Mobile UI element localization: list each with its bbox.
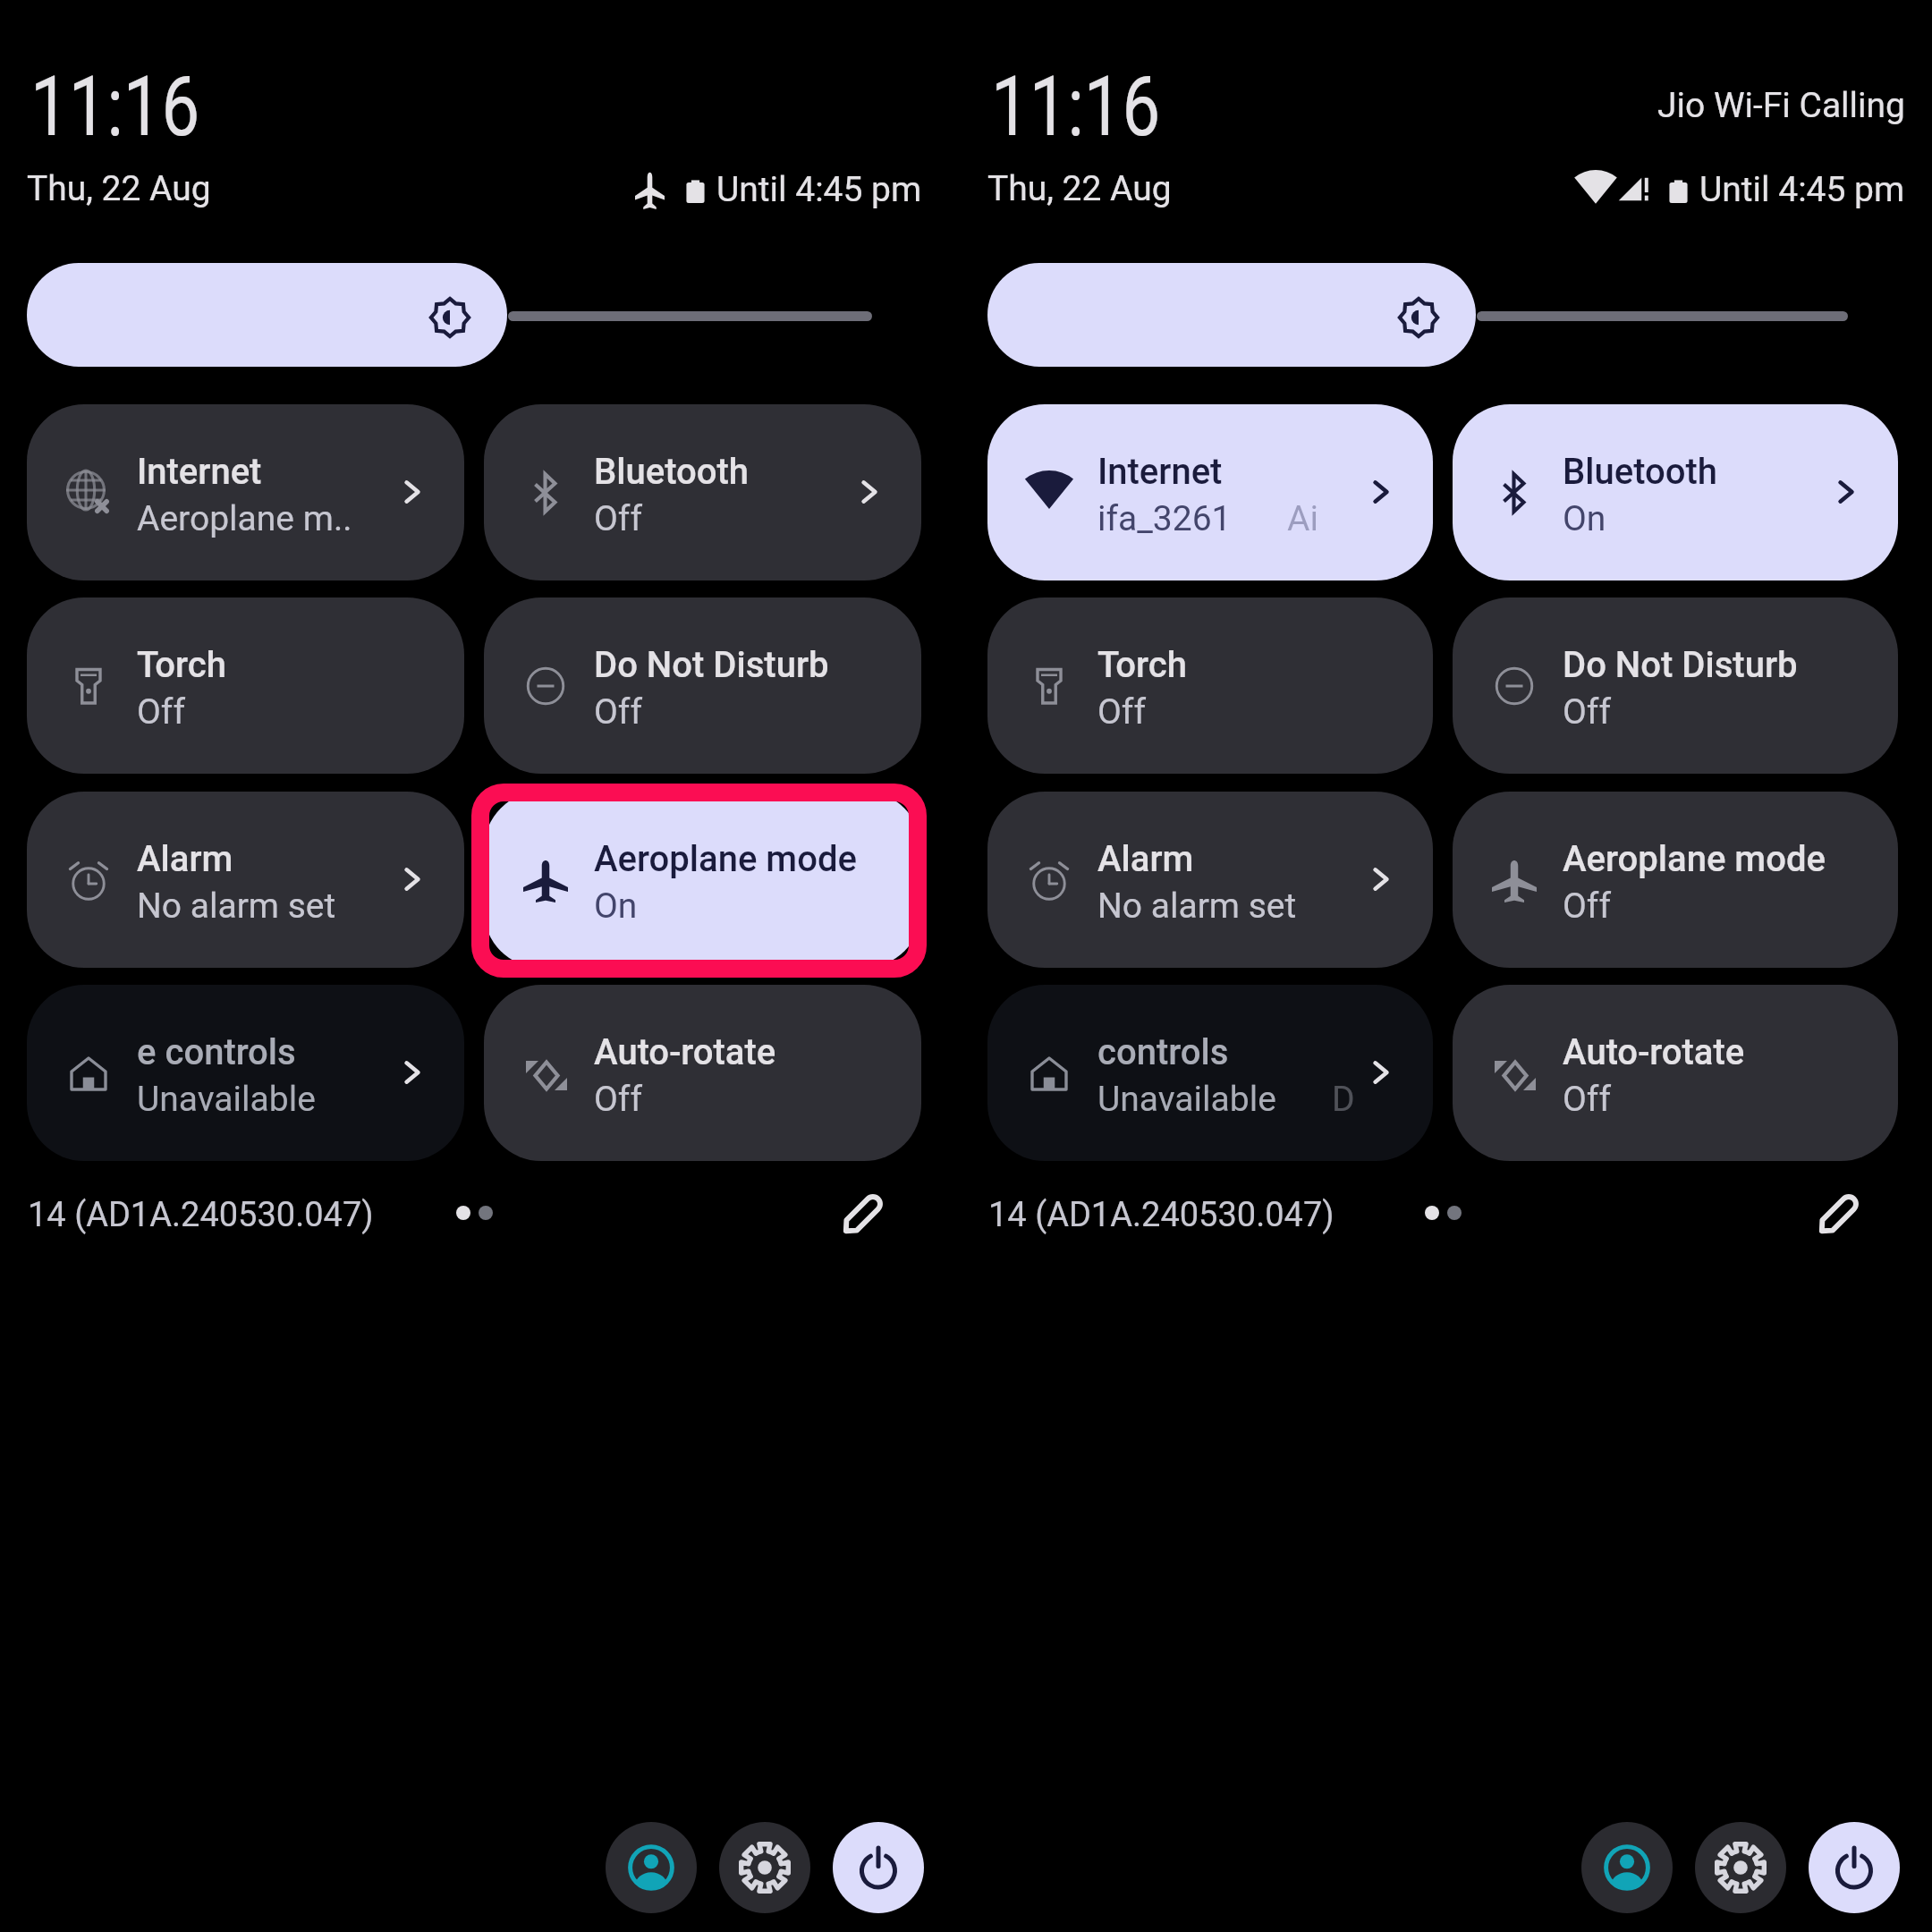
staticText: No alarm set [137, 885, 336, 927]
button[interactable]: Torch [27, 597, 464, 774]
button[interactable]: User [1581, 1822, 1673, 1913]
staticText: Ai [1287, 498, 1318, 539]
staticText: Torch [1097, 644, 1187, 686]
staticText: Internet [1097, 451, 1223, 493]
button[interactable]: Alarm [27, 792, 464, 968]
button[interactable]: Auto-rotate [484, 985, 921, 1161]
button[interactable]: Aeroplane mode [1453, 792, 1898, 968]
button[interactable]: controls [987, 985, 1433, 1161]
staticText: 14 (AD1A.240530.047) [988, 1195, 1335, 1235]
button[interactable]: User [606, 1822, 697, 1913]
staticText: Off [1563, 691, 1611, 733]
staticText: Aeroplane m.. [137, 498, 352, 539]
staticText: Do Not Disturb [594, 644, 829, 686]
button[interactable]: e controls [27, 985, 464, 1161]
button[interactable]: Settings [719, 1822, 810, 1913]
staticText: Alarm [1097, 838, 1194, 880]
button[interactable]: Edit tiles [1813, 1190, 1863, 1240]
staticText: Bluetooth [1563, 451, 1717, 493]
button[interactable]: Settings [1695, 1822, 1786, 1913]
staticText: Thu, 22 Aug [27, 168, 211, 209]
button[interactable]: Bluetooth [484, 404, 921, 580]
staticText: controls [1097, 1031, 1229, 1073]
staticText: No alarm set [1097, 885, 1297, 927]
staticText: ifa_3261 [1097, 498, 1232, 539]
staticText: Do Not Disturb [1563, 644, 1798, 686]
staticText: Aeroplane mode [594, 838, 857, 880]
staticText: e controls [137, 1031, 296, 1073]
button[interactable]: Brightness [987, 263, 1476, 367]
button[interactable]: Auto-rotate [1453, 985, 1898, 1161]
staticText: Jio Wi-Fi Calling [1657, 85, 1905, 126]
staticText: Off [594, 691, 642, 733]
staticText: 14 (AD1A.240530.047) [28, 1195, 374, 1235]
button[interactable]: Do Not Disturb [1453, 597, 1898, 774]
button[interactable]: Do Not Disturb [484, 597, 921, 774]
staticText: On [594, 885, 638, 927]
staticText: Off [1563, 885, 1611, 927]
staticText: Aeroplane mode [1563, 838, 1826, 880]
button[interactable]: Power [1809, 1822, 1900, 1913]
button[interactable]: Aeroplane mode [484, 792, 921, 968]
staticText: Unavailable [137, 1079, 316, 1120]
staticText: On [1563, 498, 1606, 539]
staticText: Off [1097, 691, 1146, 733]
staticText: Off [594, 498, 642, 539]
button[interactable]: Bluetooth [1453, 404, 1898, 580]
button[interactable]: Power [833, 1822, 924, 1913]
staticText: Off [1563, 1079, 1611, 1120]
button[interactable]: Brightness [27, 263, 507, 367]
button[interactable]: Internet [27, 404, 464, 580]
staticText: Thu, 22 Aug [987, 168, 1172, 209]
button[interactable]: Alarm [987, 792, 1433, 968]
staticText: Auto-rotate [594, 1031, 776, 1073]
staticText: 11:16 [30, 59, 200, 155]
staticText: Off [594, 1079, 642, 1120]
staticText: Until 4:45 pm [716, 169, 922, 210]
button[interactable]: Edit tiles [837, 1190, 887, 1240]
staticText: D [1332, 1079, 1355, 1120]
staticText: Unavailable [1097, 1079, 1276, 1120]
button[interactable]: Internet [987, 404, 1433, 580]
button[interactable]: Torch [987, 597, 1433, 774]
staticText: Auto-rotate [1563, 1031, 1745, 1073]
staticText: Until 4:45 pm [1699, 169, 1905, 210]
staticText: Off [137, 691, 185, 733]
staticText: 11:16 [991, 59, 1161, 155]
staticText: Torch [137, 644, 226, 686]
staticText: Bluetooth [594, 451, 749, 493]
staticText: Internet [137, 451, 262, 493]
staticText: Alarm [137, 838, 233, 880]
